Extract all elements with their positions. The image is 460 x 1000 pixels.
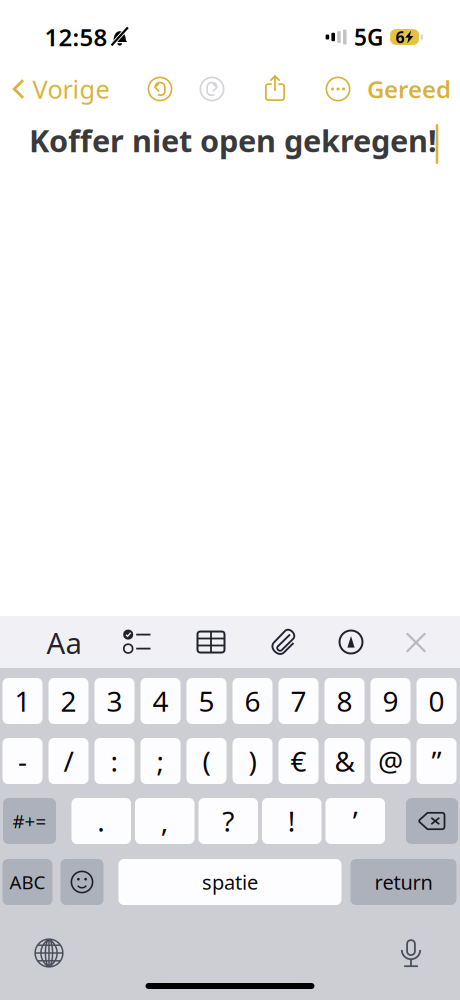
button[interactable]: ;: [140, 738, 180, 784]
staticText: 8: [336, 682, 352, 720]
staticText: Koffer niet open gekregen!: [29, 120, 437, 161]
button[interactable]: More: [317, 68, 358, 109]
staticText: !: [288, 802, 296, 840]
button[interactable]: Emoji: [60, 859, 103, 905]
button[interactable]: @: [370, 738, 410, 784]
button[interactable]: .: [71, 798, 131, 844]
staticText: Aa: [46, 623, 81, 662]
staticText: ;: [156, 742, 164, 780]
button[interactable]: /: [48, 738, 88, 784]
button[interactable]: Table: [191, 625, 230, 658]
button[interactable]: #+=: [3, 798, 56, 844]
button[interactable]: spatie: [118, 859, 341, 905]
button[interactable]: 2: [48, 678, 88, 724]
button[interactable]: 3: [94, 678, 134, 724]
staticText: 5G: [354, 22, 383, 52]
button[interactable]: 5: [186, 678, 226, 724]
staticText: &: [334, 742, 354, 780]
button[interactable]: return: [350, 859, 456, 905]
staticText: 7: [290, 682, 306, 720]
button[interactable]: 9: [370, 678, 410, 724]
button[interactable]: €: [278, 738, 318, 784]
button[interactable]: 1: [2, 678, 42, 724]
staticText: ’: [353, 802, 358, 840]
staticText: 3: [106, 682, 122, 720]
button[interactable]: 8: [324, 678, 364, 724]
button[interactable]: :: [94, 738, 134, 784]
staticText: 2: [60, 682, 76, 720]
button[interactable]: Checklist: [118, 625, 156, 659]
button[interactable]: 7: [278, 678, 318, 724]
staticText: ”: [431, 742, 441, 780]
button[interactable]: Attach: [266, 623, 300, 661]
button[interactable]: Markup: [333, 624, 368, 659]
staticText: 5: [198, 682, 214, 720]
staticText: 4: [152, 682, 168, 720]
staticText: (: [202, 742, 210, 780]
staticText: ABC: [9, 870, 45, 894]
button[interactable]: -: [2, 738, 42, 784]
button[interactable]: ABC: [2, 859, 52, 905]
staticText: 0: [428, 682, 444, 720]
staticText: -: [18, 742, 27, 780]
staticText: return: [374, 869, 432, 895]
staticText: 6: [396, 26, 405, 48]
staticText: @: [378, 742, 403, 780]
staticText: 12:58: [44, 21, 107, 53]
staticText: /: [63, 742, 73, 780]
button[interactable]: ’: [325, 798, 385, 844]
staticText: #+=: [12, 809, 46, 833]
staticText: ): [248, 742, 256, 780]
button[interactable]: (: [186, 738, 226, 784]
button[interactable]: Next keyboard: [28, 932, 70, 974]
button[interactable]: Close: [399, 626, 432, 659]
button[interactable]: Share: [257, 67, 292, 108]
staticText: Gereed: [367, 73, 451, 105]
button[interactable]: Gereed: [359, 63, 459, 115]
button[interactable]: Dictation: [394, 931, 427, 975]
staticText: 1: [14, 682, 30, 720]
button[interactable]: Delete: [406, 798, 458, 844]
staticText: 6: [244, 682, 260, 720]
button[interactable]: 0: [416, 678, 456, 724]
button[interactable]: !: [262, 798, 321, 844]
button[interactable]: &: [324, 738, 364, 784]
button[interactable]: Format: [40, 617, 87, 668]
staticText: spatie: [202, 869, 258, 895]
staticText: .: [97, 802, 105, 840]
staticText: :: [110, 742, 118, 780]
button[interactable]: ): [232, 738, 272, 784]
button[interactable]: ?: [198, 798, 258, 844]
button[interactable]: Vorige: [6, 62, 115, 116]
staticText: Vorige: [32, 72, 109, 106]
button[interactable]: Undo: [139, 68, 180, 109]
button[interactable]: 4: [140, 678, 180, 724]
button[interactable]: Redo: [191, 68, 232, 109]
staticText: ?: [222, 802, 234, 840]
staticText: ,: [161, 802, 169, 840]
staticText: €: [290, 742, 306, 780]
staticText: 9: [382, 682, 398, 720]
button[interactable]: ,: [135, 798, 194, 844]
button[interactable]: ”: [416, 738, 456, 784]
button[interactable]: 6: [232, 678, 272, 724]
